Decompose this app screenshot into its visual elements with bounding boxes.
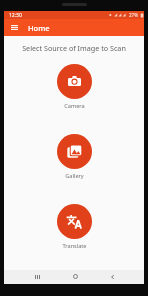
- staticText: Camera: [64, 102, 85, 110]
- staticText: 12:30: [9, 12, 22, 19]
- button[interactable]: Back: [103, 271, 121, 282]
- button[interactable]: [57, 64, 92, 99]
- button[interactable]: [57, 134, 92, 169]
- staticText: 27%: [129, 12, 138, 18]
- button[interactable]: [57, 204, 92, 239]
- staticText: Home: [28, 23, 50, 33]
- staticText: Translate: [62, 242, 87, 250]
- staticText: Select Source of Image to Scan: [22, 43, 126, 53]
- button[interactable]: Home: [66, 271, 84, 282]
- button[interactable]: Open navigation menu: [7, 20, 21, 34]
- button[interactable]: Recent apps: [28, 271, 46, 282]
- staticText: Gallery: [65, 172, 84, 180]
